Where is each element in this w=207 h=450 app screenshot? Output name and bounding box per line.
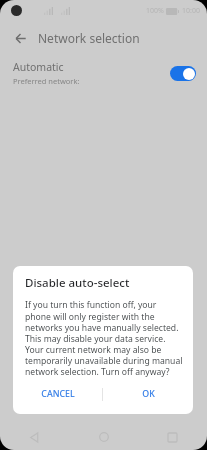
staticText: If you turn this function off, your phon…	[25, 299, 183, 377]
staticText: Network selection	[38, 30, 140, 46]
staticText: Preferred network:	[13, 76, 80, 86]
button[interactable]: Recent apps	[138, 424, 207, 450]
staticText: 100%	[146, 6, 164, 16]
staticText: 10:00	[182, 6, 200, 16]
button[interactable]: Back	[6, 24, 34, 52]
staticText: CANCEL	[41, 388, 75, 400]
button[interactable]: CANCEL	[13, 379, 102, 409]
button[interactable]: Back	[0, 424, 69, 450]
button[interactable]: OK	[103, 379, 193, 409]
staticText: Disable auto-select	[25, 275, 130, 291]
button[interactable]: Automatic	[0, 54, 207, 92]
staticText: Automatic	[13, 60, 64, 74]
button[interactable]: Automatic network selection toggle	[170, 66, 196, 81]
staticText: OK	[142, 388, 155, 400]
